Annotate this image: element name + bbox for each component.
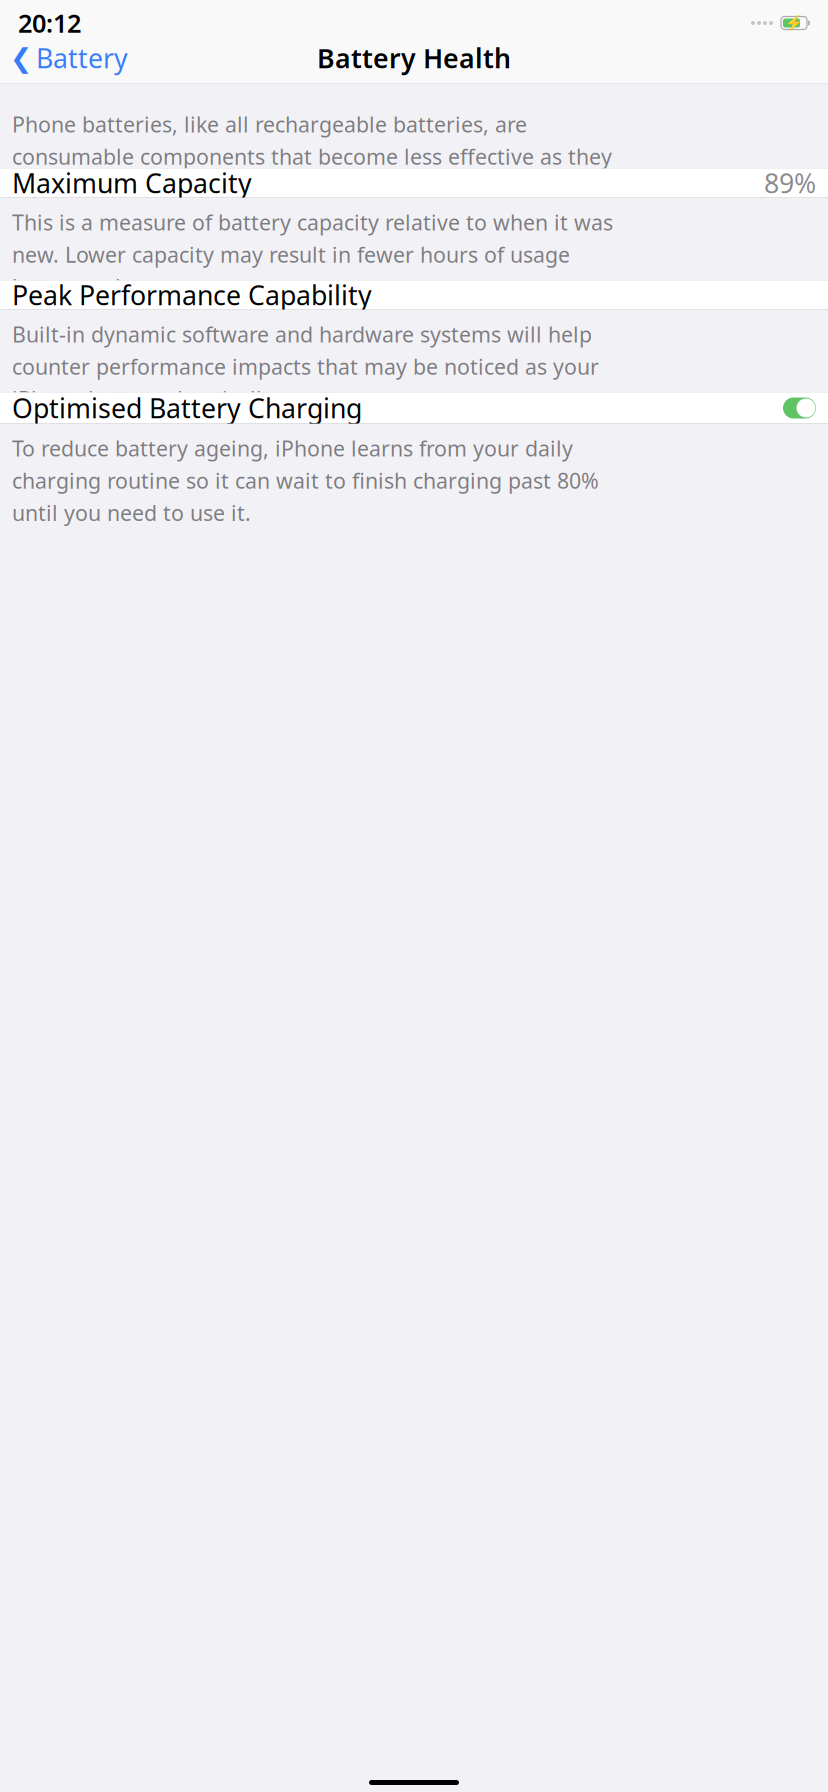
staticText: counter performance impacts that may be … [12,352,599,381]
staticText: Peak Performance Capability [12,277,372,313]
staticText: This is a measure of battery capacity re… [12,208,613,236]
button[interactable]: ❮ [2,39,136,77]
staticText: between charges. [12,273,190,301]
staticText: Maximum Capacity [12,165,252,201]
staticText: To reduce battery ageing, iPhone learns … [12,434,573,462]
staticText: 89% [764,165,816,201]
staticText: until you need to use it. [12,499,251,527]
staticText: age. [12,175,61,203]
staticText: ❮ [10,43,32,73]
button[interactable]: Maximum Capacity [0,168,828,197]
staticText: ⚡ [785,15,803,31]
button[interactable]: Peak Performance Capability [0,280,828,309]
staticText: Learn more… [61,175,194,203]
staticText: consumable components that become less e… [12,142,612,171]
staticText: 20:12 [18,6,81,40]
staticText: charging routine so it can wait to finis… [12,466,599,495]
staticText: Phone batteries, like all rechargeable b… [12,110,527,138]
staticText: Battery [36,40,128,76]
button[interactable]: Learn more… [61,175,194,203]
staticText: iPhone battery chemically ages. [12,385,332,413]
staticText: Battery Health [317,40,511,76]
staticText: Optimised Battery Charging [12,390,362,426]
button[interactable]: Optimised Battery Charging [0,392,828,423]
staticText: new. Lower capacity may result in fewer … [12,240,570,269]
staticText: Built-in dynamic software and hardware s… [12,320,592,348]
